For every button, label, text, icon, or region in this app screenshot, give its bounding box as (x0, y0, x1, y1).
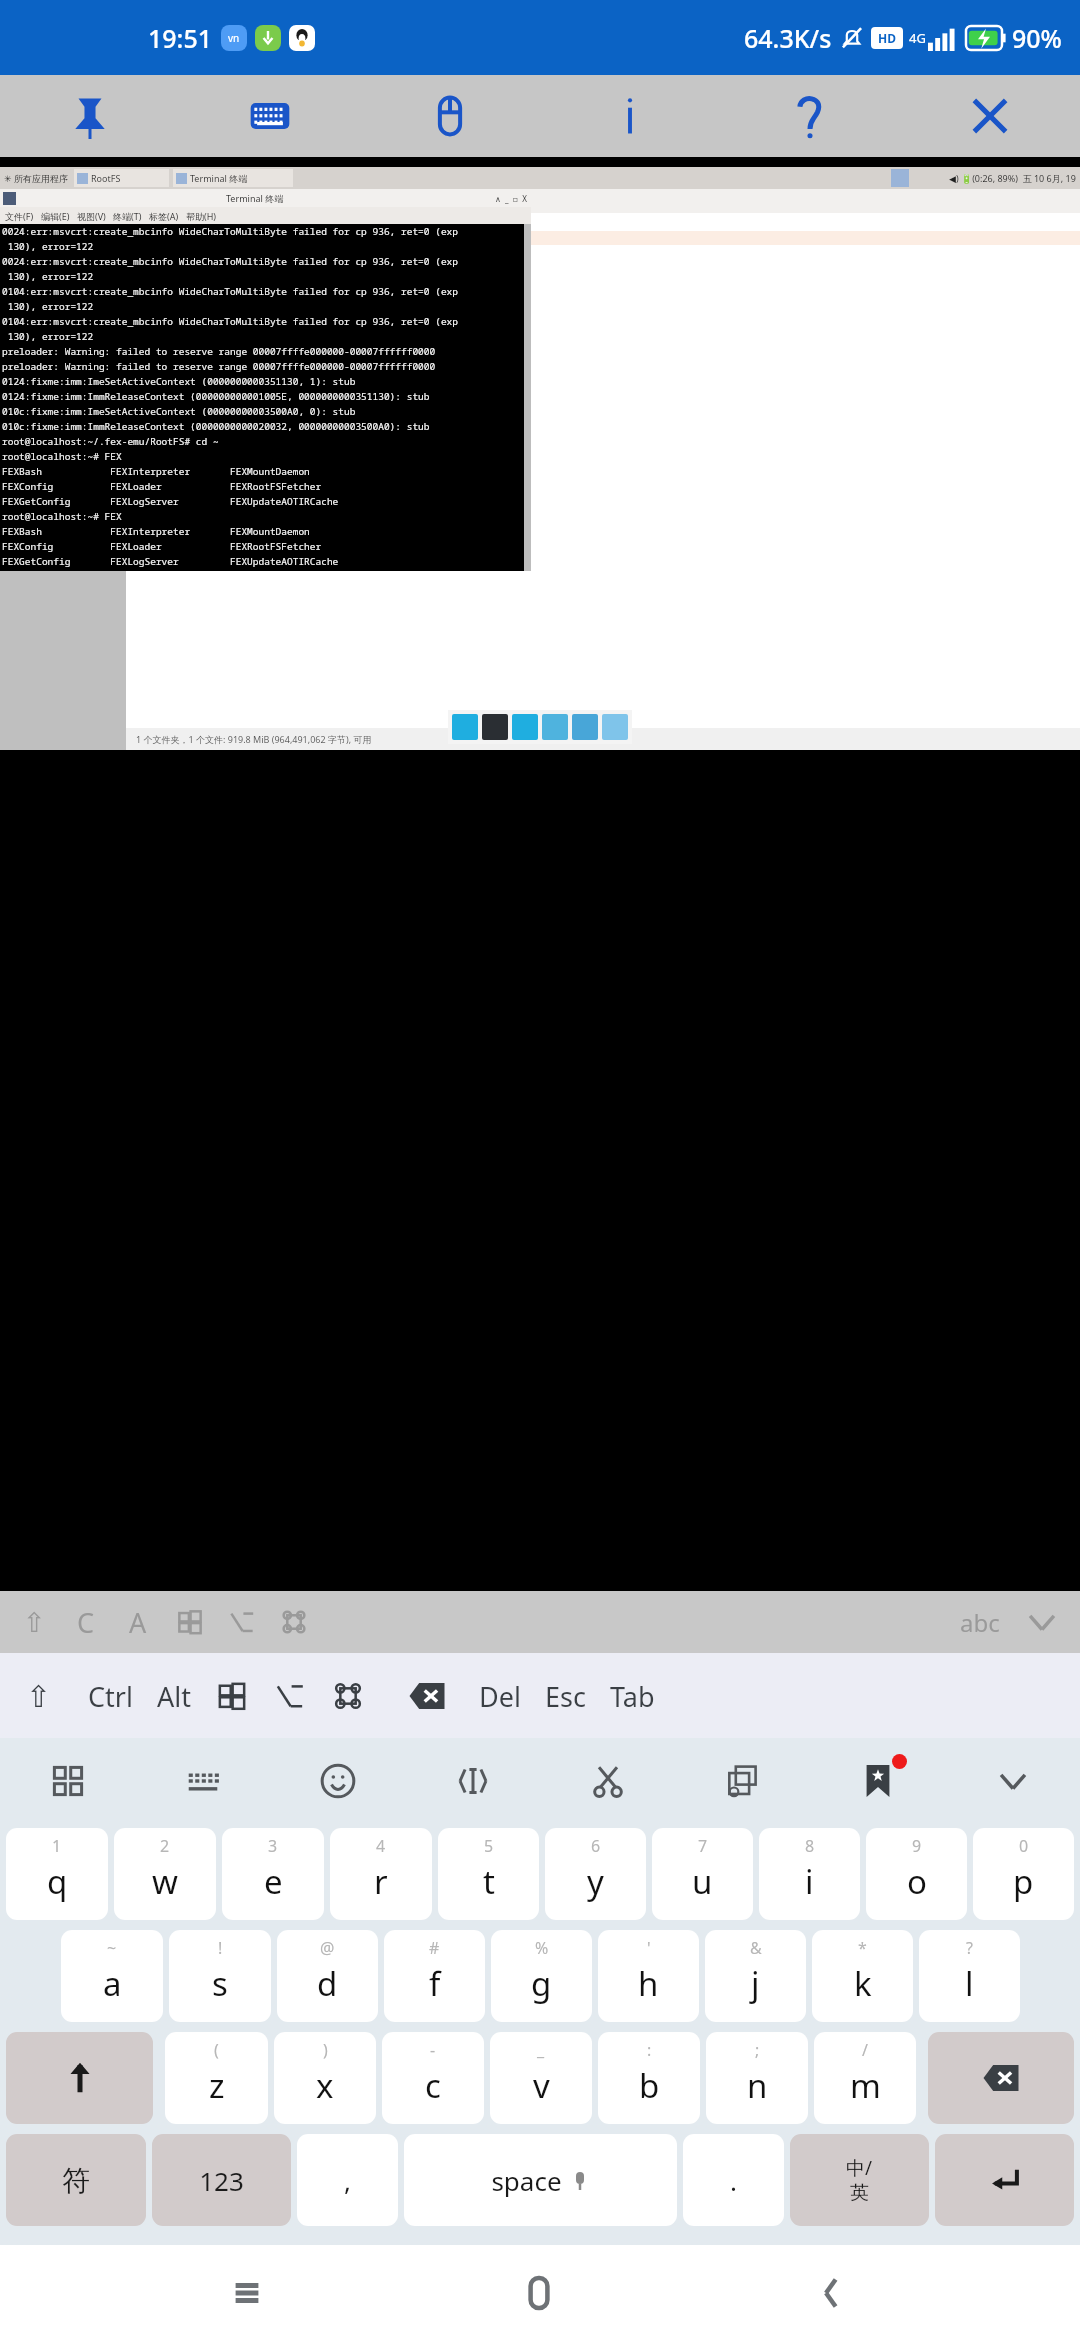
button[interactable]: 2 (114, 1828, 216, 1920)
button[interactable] (542, 714, 568, 740)
button[interactable]: & (705, 1930, 806, 2022)
button[interactable]: Keyboard layout (135, 1738, 270, 1823)
button[interactable]: Enter (935, 2134, 1074, 2226)
button[interactable]: 8 (759, 1828, 860, 1920)
staticText: Ctrl (88, 1678, 133, 1715)
button[interactable]: Win (203, 1667, 261, 1725)
button[interactable]: Del (479, 1667, 521, 1725)
button[interactable]: ⇧ (8, 1596, 60, 1648)
staticText: 7 (698, 1835, 708, 1857)
button[interactable]: ; (706, 2032, 808, 2124)
button[interactable]: Alt (157, 1667, 191, 1725)
button[interactable]: Help (720, 75, 900, 157)
button[interactable]: / (814, 2032, 916, 2124)
button[interactable]: 5 (438, 1828, 539, 1920)
button[interactable]: Command (319, 1667, 377, 1725)
button[interactable]: 1 (6, 1828, 108, 1920)
staticText: p (1013, 1859, 1034, 1904)
staticText: 5 (484, 1835, 494, 1857)
button[interactable]: Pin (0, 75, 180, 157)
button[interactable]: Symbols (6, 2134, 146, 2226)
staticText: Terminal 终端 (226, 192, 284, 204)
button[interactable]: @ (277, 1930, 378, 2022)
staticText: FEXGetConfig FEXLogServer FEXUpdateAOTIR… (2, 555, 339, 568)
button[interactable]: % (491, 1930, 592, 2022)
button[interactable]: 9 (866, 1828, 967, 1920)
button[interactable] (512, 714, 538, 740)
button[interactable]: Recents (202, 2248, 292, 2338)
button[interactable]: Win (164, 1596, 216, 1648)
button[interactable]: Tab (610, 1667, 655, 1725)
button[interactable]: # (384, 1930, 485, 2022)
button[interactable]: Period (683, 2134, 784, 2226)
button[interactable]: Ctrl (88, 1667, 133, 1725)
staticText: 编辑(E) (41, 210, 70, 222)
button[interactable]: Collapse (945, 1738, 1080, 1823)
button[interactable]: _ (490, 2032, 592, 2124)
button[interactable]: Cut (540, 1738, 675, 1823)
button[interactable]: Shift (10, 1667, 68, 1725)
staticText: HD (878, 30, 896, 46)
button[interactable]: 7 (652, 1828, 753, 1920)
button[interactable]: - (382, 2032, 484, 2124)
button[interactable]: Command (268, 1596, 320, 1648)
button[interactable]: Favorites (810, 1738, 945, 1823)
staticText: y (587, 1859, 604, 1904)
button[interactable]: Info (540, 75, 720, 157)
button[interactable]: Comma (297, 2134, 398, 2226)
button[interactable]: abc (948, 1606, 1012, 1639)
button[interactable]: Language (790, 2134, 929, 2226)
staticText: 90% (1012, 21, 1062, 55)
button[interactable]: Shift (6, 2032, 153, 2124)
button[interactable]: ! (169, 1930, 271, 2022)
button[interactable]: * (812, 1930, 913, 2022)
staticText: e (264, 1859, 283, 1904)
staticText: FEXBash FEXInterpreter FEXMountDaemon (2, 525, 310, 538)
button[interactable]: Keyboard (180, 75, 360, 157)
button[interactable]: 3 (222, 1828, 324, 1920)
button[interactable]: ) (274, 2032, 376, 2124)
staticText: 130), error=122 (2, 330, 94, 343)
button[interactable]: Option (216, 1596, 268, 1648)
button[interactable]: ' (598, 1930, 699, 2022)
button[interactable]: Backspace (397, 1667, 457, 1725)
staticText: FEXBash FEXInterpreter FEXMountDaemon (2, 465, 310, 478)
button[interactable]: Option (261, 1667, 319, 1725)
button[interactable]: Mouse (360, 75, 540, 157)
button[interactable]: ( (165, 2032, 268, 2124)
button[interactable] (572, 714, 598, 740)
staticText: 64.3K/s (744, 21, 832, 55)
staticText: t (483, 1859, 495, 1904)
button[interactable] (482, 714, 508, 740)
staticText: 6 (591, 1835, 601, 1857)
button[interactable]: Close (900, 75, 1080, 157)
button[interactable]: Emoji (270, 1738, 405, 1823)
staticText: 2 (160, 1835, 170, 1857)
button[interactable]: Hide (1012, 1592, 1072, 1652)
button[interactable]: Apps (0, 1738, 135, 1823)
staticText: 123 (199, 2163, 244, 2198)
button[interactable] (452, 714, 478, 740)
button[interactable]: Cursor (405, 1738, 540, 1823)
button[interactable]: 6 (545, 1828, 646, 1920)
staticText: s (212, 1961, 228, 2006)
button[interactable] (602, 714, 628, 740)
button[interactable]: Backspace (928, 2032, 1074, 2124)
button[interactable]: : (598, 2032, 700, 2124)
button[interactable]: 4 (330, 1828, 432, 1920)
button[interactable]: Space (404, 2134, 677, 2226)
button[interactable]: ~ (61, 1930, 163, 2022)
button[interactable]: C (60, 1596, 112, 1648)
staticText: preloader: Warning: failed to reserve ra… (2, 360, 436, 373)
button[interactable]: Esc (545, 1667, 586, 1725)
staticText: 0124:fixme:imm:ImmReleaseContext (000000… (2, 390, 430, 403)
button[interactable]: 0 (973, 1828, 1074, 1920)
button[interactable]: A (112, 1596, 164, 1648)
button[interactable]: Numbers (152, 2134, 291, 2226)
staticText: g (531, 1961, 552, 2006)
staticText: # (429, 1937, 440, 1959)
button[interactable]: Translate (675, 1738, 810, 1823)
button[interactable]: ? (919, 1930, 1020, 2022)
button[interactable]: Home (494, 2248, 584, 2338)
button[interactable]: Back (787, 2248, 877, 2338)
